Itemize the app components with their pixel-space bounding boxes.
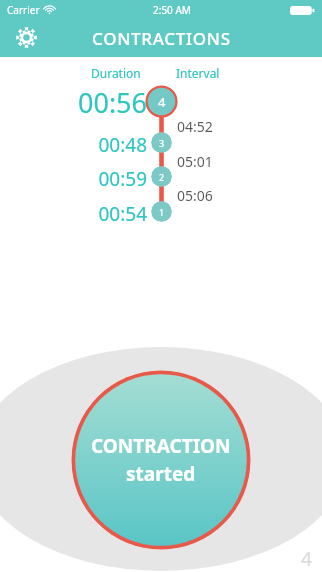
staticText: 2 bbox=[159, 171, 165, 183]
staticText: 4 bbox=[301, 546, 312, 572]
staticText: CONTRACTION bbox=[91, 433, 231, 459]
staticText: 00:54 bbox=[98, 201, 147, 222]
staticText: Interval bbox=[176, 65, 220, 81]
button[interactable]: 3 bbox=[151, 132, 172, 153]
staticText: 1 bbox=[159, 206, 165, 218]
staticText: Carrier bbox=[7, 3, 40, 17]
button[interactable]: 2 bbox=[151, 166, 172, 187]
staticText: started bbox=[126, 461, 196, 487]
staticText: 00:56 bbox=[77, 84, 147, 118]
button[interactable]: CONTRACTION bbox=[71, 370, 251, 550]
staticText: Duration bbox=[91, 65, 141, 81]
staticText: 4 bbox=[158, 93, 166, 111]
staticText: 00:48 bbox=[98, 132, 147, 153]
button[interactable]: Settings bbox=[8, 21, 44, 53]
staticText: CONTRACTIONS bbox=[92, 27, 231, 50]
staticText: 00:59 bbox=[98, 166, 147, 187]
staticText: 04:52 bbox=[177, 117, 213, 136]
staticText: 2:50 AM bbox=[153, 3, 191, 17]
staticText: 3 bbox=[159, 137, 165, 149]
staticText: 05:01 bbox=[177, 152, 213, 171]
button[interactable]: 1 bbox=[151, 201, 172, 222]
staticText: 05:06 bbox=[177, 186, 213, 205]
button[interactable]: 4 bbox=[145, 85, 178, 118]
